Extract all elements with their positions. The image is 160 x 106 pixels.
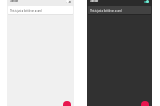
button[interactable]: Toggle dark mode	[144, 0, 149, 3]
button[interactable]: Add	[63, 101, 71, 106]
staticText: This is just a list tile on a card	[90, 9, 122, 13]
button[interactable]: Add	[141, 101, 149, 106]
button[interactable]: Toggle dark mode	[66, 0, 71, 3]
staticText: This is just a list tile on a card	[10, 9, 42, 13]
button[interactable]: This is just a list tile on a card	[88, 6, 151, 14]
staticText: Dark Mode	[90, 0, 98, 3]
staticText: Dark Mode	[10, 0, 18, 3]
button[interactable]: This is just a list tile on a card	[8, 6, 73, 14]
